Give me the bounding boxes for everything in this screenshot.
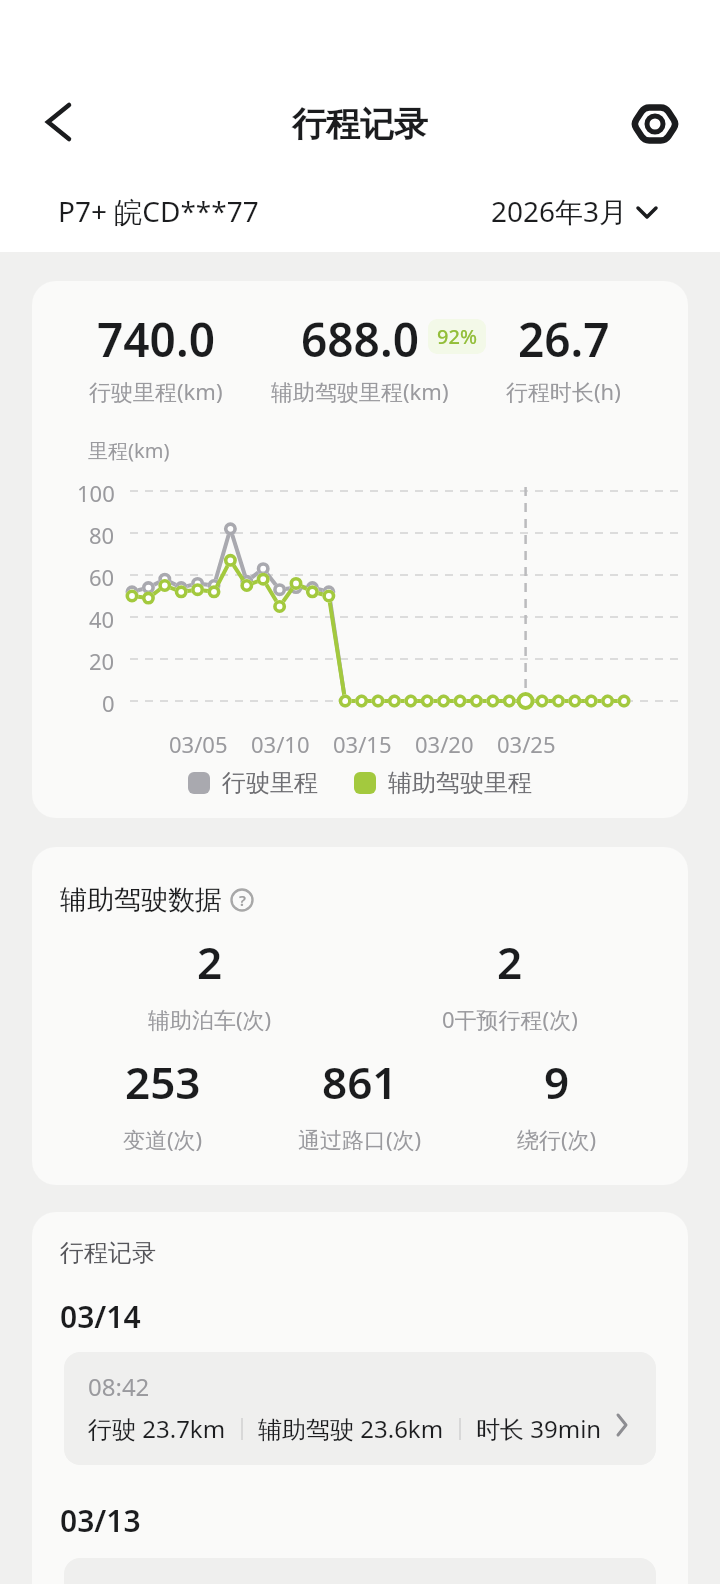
staticText: 行驶里程(km): [89, 376, 223, 406]
button[interactable]: 08:42: [64, 1352, 656, 1465]
staticText: 通过路口(次): [298, 1124, 422, 1154]
staticText: 里程(km): [88, 437, 170, 464]
staticText: 时长 39min: [476, 1412, 602, 1445]
staticText: 861: [322, 1052, 398, 1112]
button[interactable]: [42, 100, 78, 146]
staticText: 03/05: [169, 729, 228, 759]
staticText: 03/13: [60, 1500, 141, 1541]
staticText: 9: [544, 1052, 570, 1112]
staticText: 100: [77, 478, 115, 508]
staticText: 26.7: [518, 308, 610, 371]
staticText: 40: [89, 604, 115, 634]
staticText: 辅助驾驶数据: [60, 883, 222, 917]
staticText: 行程时长(h): [506, 376, 621, 406]
staticText: 08:42: [88, 1370, 150, 1403]
staticText: 辅助泊车(次): [148, 1004, 272, 1034]
staticText: 行程记录: [60, 1238, 156, 1268]
staticText: 688.0: [301, 308, 419, 371]
staticText: 辅助驾驶 23.6km: [258, 1412, 444, 1445]
staticText: 0: [102, 688, 115, 718]
staticText: 03/15: [333, 729, 392, 759]
staticText: 2026年3月: [491, 192, 628, 230]
staticText: 辅助驾驶里程: [388, 768, 532, 798]
staticText: 0干预行程(次): [442, 1004, 578, 1034]
staticText: 绕行(次): [517, 1124, 597, 1154]
staticText: 92%: [437, 323, 477, 350]
staticText: 行驶里程: [222, 768, 318, 798]
button[interactable]: [630, 99, 680, 149]
button[interactable]: 2026年3月: [0, 192, 658, 230]
staticText: 03/14: [60, 1296, 141, 1337]
staticText: 03/10: [251, 729, 310, 759]
staticText: 2: [497, 932, 523, 992]
staticText: 行驶 23.7km: [88, 1412, 226, 1445]
staticText: 60: [89, 562, 115, 592]
staticText: 03/20: [415, 729, 474, 759]
staticText: 740.0: [97, 308, 215, 371]
button[interactable]: P7+ 皖CD***77: [58, 192, 259, 230]
staticText: 辅助驾驶里程(km): [271, 376, 449, 406]
staticText: 变道(次): [123, 1124, 203, 1154]
staticText: 80: [89, 520, 115, 550]
button[interactable]: ?: [230, 888, 254, 912]
staticText: ?: [239, 890, 246, 910]
staticText: 行程记录: [292, 103, 428, 146]
staticText: 253: [125, 1052, 201, 1112]
staticText: 20: [89, 646, 115, 676]
staticText: 2: [197, 932, 223, 992]
staticText: 03/25: [497, 729, 556, 759]
